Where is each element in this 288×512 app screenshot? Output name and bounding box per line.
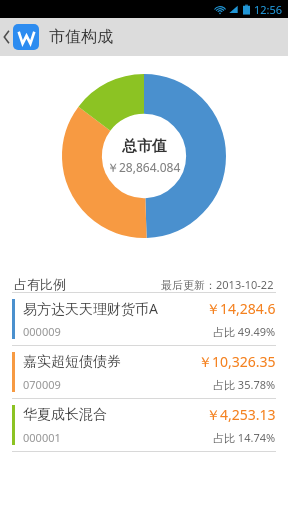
staticText: 占比 49.49% [213,324,276,339]
staticText: 占有比例 [14,276,66,292]
staticText: 占比 35.78% [213,377,276,392]
button[interactable]: 华夏成长混合 [0,399,288,451]
staticText: 占比 14.74% [213,430,276,445]
button[interactable]: 易方达天天理财货币A [0,293,288,345]
staticText: ￥14,284.6 [206,299,276,318]
staticText: ￥28,864.084 [107,159,181,175]
button[interactable]: Back [0,18,43,56]
staticText: 市值构成 [49,27,113,47]
staticText: 最后更新：2013-10-22 [161,277,274,292]
staticText: 000001 [23,430,61,445]
button[interactable]: 嘉实超短债债券 [0,346,288,398]
staticText: 总市值 [122,137,167,156]
staticText: 070009 [23,377,61,392]
staticText: 000009 [23,324,61,339]
staticText: ￥10,326.35 [198,352,276,371]
staticText: 易方达天天理财货币A [23,299,158,318]
staticText: 12:56 [254,2,283,17]
staticText: 华夏成长混合 [23,406,107,424]
staticText: 嘉实超短债债券 [23,353,121,371]
staticText: ￥4,253.13 [206,405,276,424]
